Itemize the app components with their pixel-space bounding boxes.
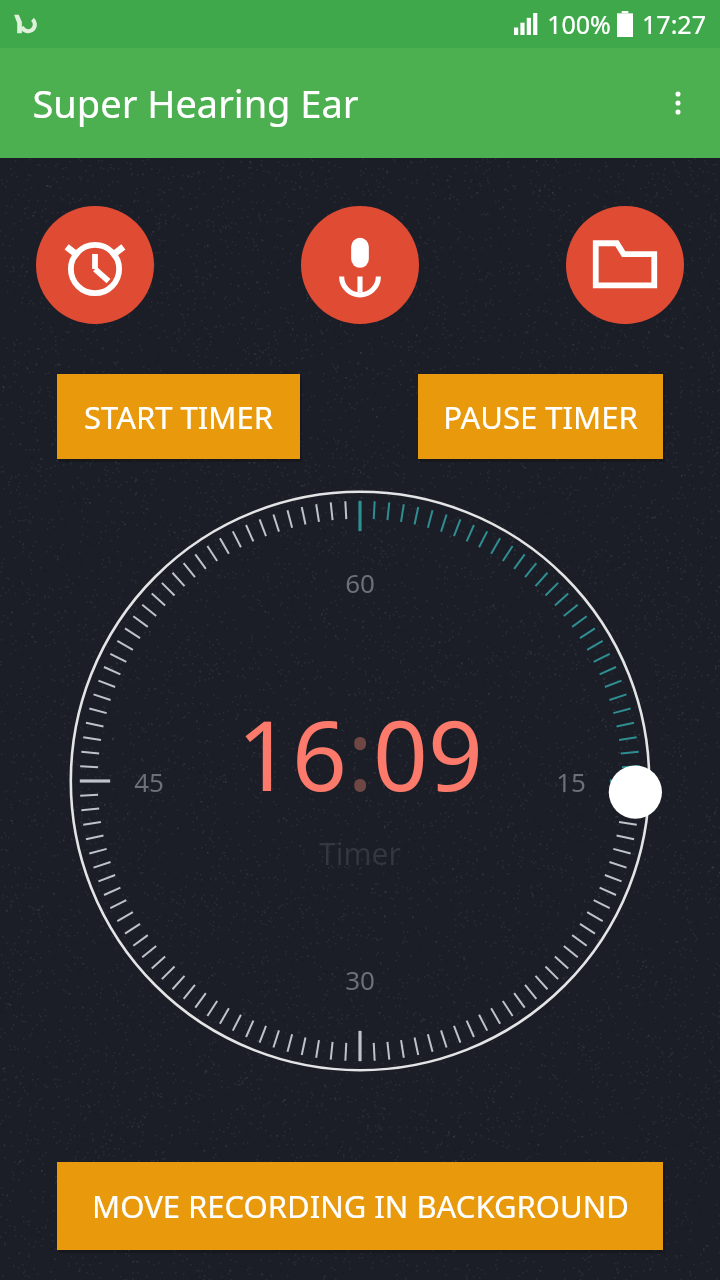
staticText: 09	[373, 688, 483, 819]
staticText: 60	[345, 565, 375, 600]
staticText: 45	[134, 764, 164, 799]
staticText: PAUSE TIMER	[443, 396, 638, 438]
staticText: 16	[237, 688, 347, 819]
button[interactable]: Record	[301, 206, 419, 324]
button[interactable]: MOVE RECORDING IN BACKGROUND	[57, 1162, 663, 1250]
staticText: Timer	[319, 833, 401, 874]
button[interactable]: START TIMER	[57, 374, 300, 459]
staticText: 15	[556, 764, 586, 799]
button[interactable]: Files	[566, 206, 684, 324]
staticText: MOVE RECORDING IN BACKGROUND	[92, 1185, 629, 1227]
button[interactable]: PAUSE TIMER	[418, 374, 663, 459]
staticText: :	[347, 688, 373, 819]
staticText: 17:27	[642, 7, 706, 41]
staticText: Super Hearing Ear	[32, 77, 359, 129]
button[interactable]: 60	[60, 481, 660, 1081]
staticText: 30	[345, 962, 375, 997]
staticText: START TIMER	[84, 396, 273, 438]
button[interactable]: More options	[650, 75, 706, 131]
staticText: 100%	[547, 7, 611, 41]
button[interactable]: Alarm	[36, 206, 154, 324]
